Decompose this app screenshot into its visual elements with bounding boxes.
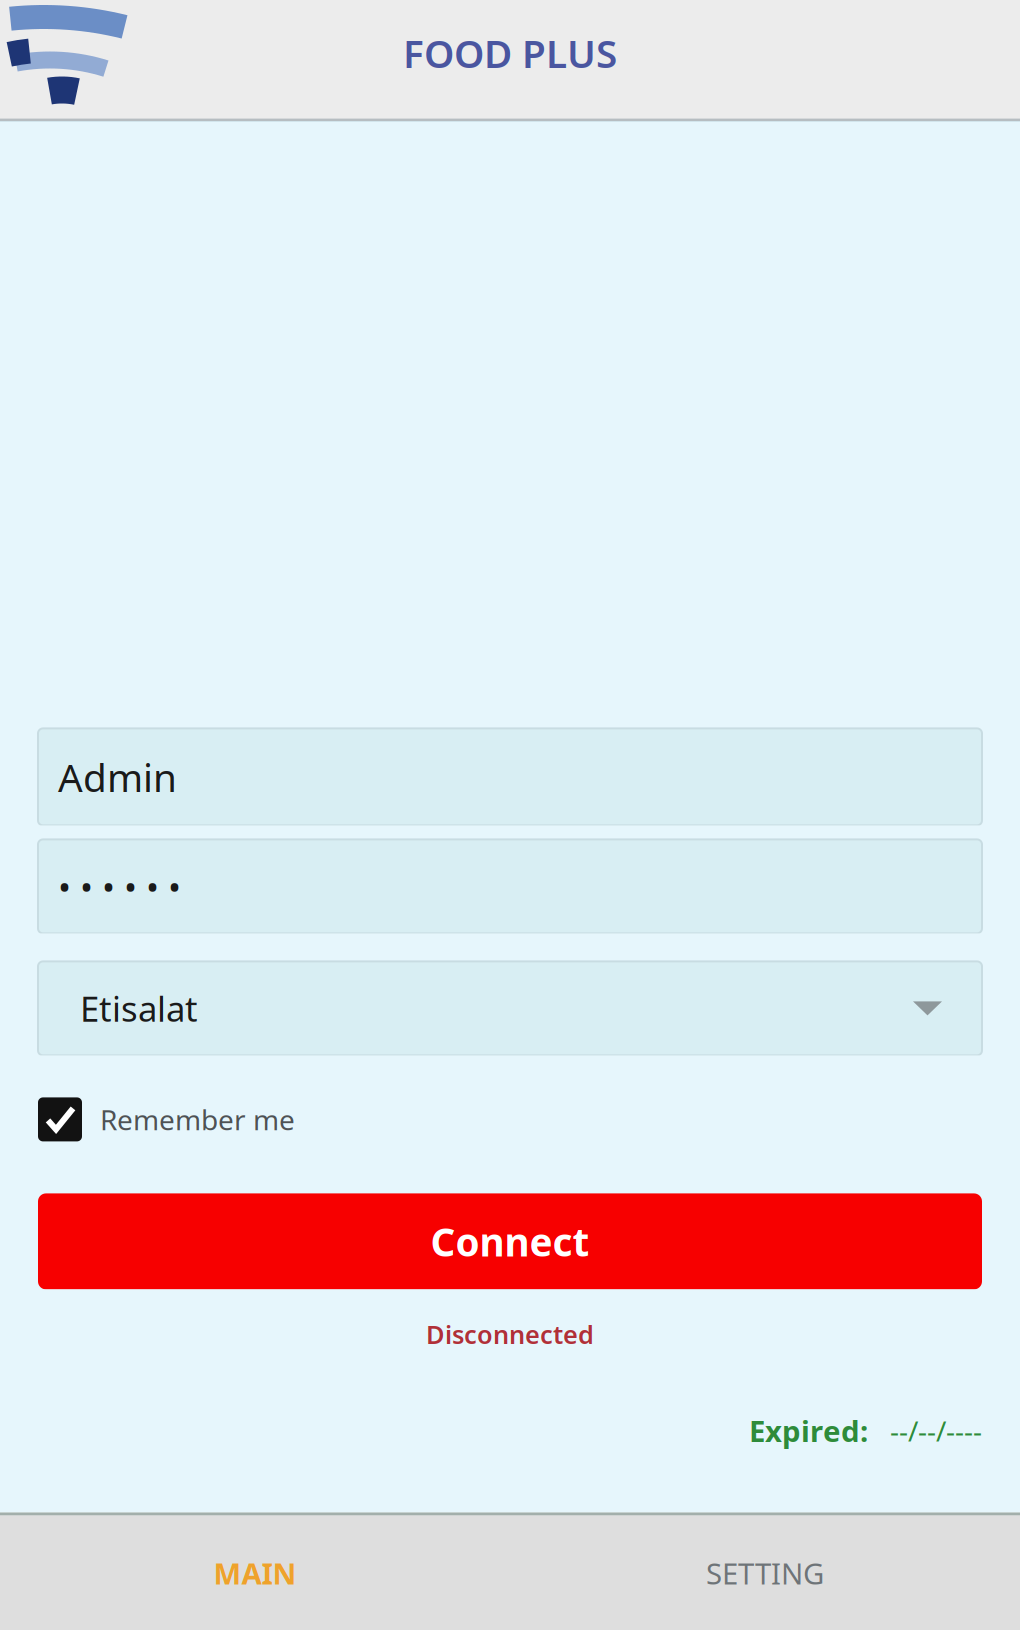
button[interactable]: Etisalat bbox=[38, 961, 982, 1055]
staticText: SETTING bbox=[706, 1553, 824, 1592]
button[interactable]: MAIN bbox=[0, 1516, 510, 1630]
button[interactable]: SETTING bbox=[510, 1516, 1020, 1630]
staticText: --/--/---- bbox=[890, 1412, 982, 1449]
button[interactable]: Admin bbox=[38, 728, 982, 825]
staticText: • • • • • • bbox=[58, 863, 181, 909]
staticText: Expired: bbox=[749, 1411, 868, 1450]
button[interactable]: Remember me bbox=[38, 1095, 982, 1143]
staticText: MAIN bbox=[213, 1553, 296, 1592]
button[interactable]: Password bbox=[38, 839, 982, 933]
staticText: Remember me bbox=[100, 1101, 295, 1138]
staticText: Admin bbox=[58, 751, 177, 802]
staticText: Etisalat bbox=[80, 985, 198, 1031]
staticText: Disconnected bbox=[426, 1317, 594, 1351]
button[interactable]: Connect bbox=[38, 1193, 982, 1289]
staticText: Connect bbox=[430, 1216, 589, 1267]
staticText: FOOD PLUS bbox=[403, 27, 617, 79]
